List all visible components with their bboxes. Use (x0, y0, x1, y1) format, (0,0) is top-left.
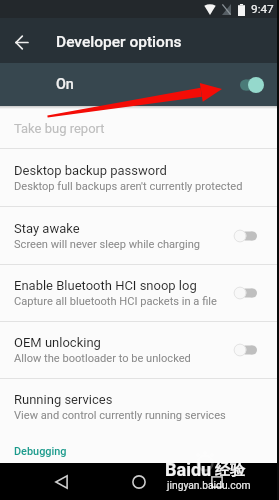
button[interactable]: Back (43, 464, 79, 500)
staticText: Enable Bluetooth HCI snoop log (14, 278, 197, 293)
staticText: 经验 (215, 461, 245, 480)
staticText: View and control currently running servi… (14, 409, 226, 422)
staticText: Allow the bootloader to be unlocked (14, 352, 191, 365)
button[interactable]: Stay awake (0, 207, 279, 264)
button[interactable]: Enable Bluetooth HCI snoop log (0, 265, 279, 321)
staticText: Screen will never sleep while charging (14, 238, 201, 251)
button[interactable]: On (0, 63, 279, 106)
staticText: 9:47 (251, 2, 274, 16)
button[interactable]: Take bug report (0, 106, 279, 148)
staticText: Take bug report (14, 121, 105, 136)
staticText: On (56, 76, 74, 93)
button[interactable]: Running services (0, 379, 279, 435)
button[interactable]: Desktop backup password (0, 149, 279, 206)
staticText: OEM unlocking (14, 335, 101, 350)
staticText: Stay awake (14, 221, 80, 236)
staticText: Debugging (14, 445, 67, 458)
staticText: Baidu (165, 459, 212, 480)
staticText: jingyan.baidu.com (167, 479, 251, 491)
staticText: Capture all bluetooth HCI packets in a f… (14, 295, 217, 308)
button[interactable]: Navigate up (8, 27, 36, 55)
button[interactable]: OEM unlocking (0, 322, 279, 378)
staticText: Running services (14, 392, 113, 407)
button[interactable]: Home (121, 464, 157, 500)
staticText: Developer options (56, 33, 182, 51)
staticText: Desktop full backups aren't currently pr… (14, 180, 243, 193)
button[interactable]: Recent apps (199, 464, 235, 500)
staticText: Desktop backup password (14, 163, 167, 178)
